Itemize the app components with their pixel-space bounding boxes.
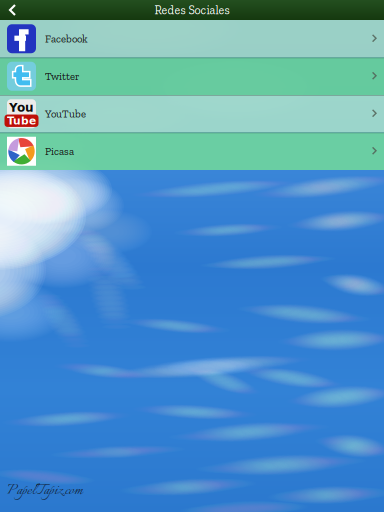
button[interactable]: Twitter — [0, 57, 384, 95]
staticText: Picasa — [45, 145, 74, 158]
staticText: Tube — [7, 114, 36, 127]
staticText: Twitter — [45, 70, 79, 83]
button[interactable]: Picasa — [0, 132, 384, 170]
button[interactable]: Facebook — [0, 20, 384, 57]
button[interactable]: You — [0, 95, 384, 132]
staticText: YouTube — [45, 107, 86, 120]
button[interactable]: Back — [0, 0, 26, 20]
staticText: Redes Sociales — [154, 3, 229, 17]
staticText: You — [9, 101, 34, 115]
staticText: PapelTapiz.com — [7, 479, 83, 502]
staticText: Facebook — [45, 32, 88, 45]
